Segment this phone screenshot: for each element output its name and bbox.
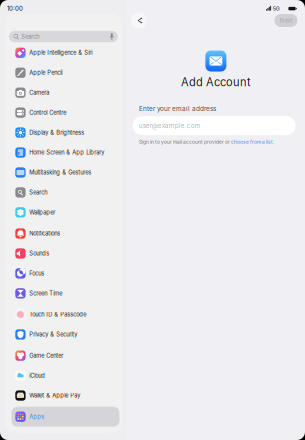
- button[interactable]: Back: [131, 12, 147, 28]
- staticText: Apple Intelligence & Siri: [29, 49, 92, 56]
- staticText: user@example.com: [139, 122, 201, 129]
- staticText: Screen Time: [29, 290, 62, 297]
- staticText: Wallet & Apple Pay: [29, 392, 80, 399]
- button[interactable]: Display & Brightness: [11, 123, 119, 142]
- staticText: Display & Brightness: [29, 129, 84, 136]
- staticText: Camera: [29, 89, 49, 96]
- button[interactable]: Wallet & Apple Pay: [11, 385, 119, 405]
- button[interactable]: Apps: [11, 407, 119, 427]
- staticText: Touch ID & Passcode: [29, 311, 86, 318]
- staticText: Notifications: [29, 230, 60, 237]
- staticText: Apps: [29, 413, 44, 420]
- staticText: Next: [279, 17, 292, 24]
- staticText: iCloud: [29, 372, 45, 379]
- button[interactable]: Touch ID & Passcode: [11, 304, 119, 324]
- staticText: Add Account: [181, 75, 251, 89]
- button[interactable]: user@example.com: [133, 116, 296, 135]
- button[interactable]: Apple Pencil: [11, 63, 119, 83]
- staticText: Control Centre: [29, 109, 66, 116]
- button[interactable]: Multitasking & Gestures: [11, 162, 119, 182]
- button[interactable]: Screen Time: [11, 283, 119, 303]
- staticText: Apple Pencil: [29, 69, 62, 76]
- staticText: Home Screen & App Library: [29, 149, 104, 156]
- button[interactable]: Privacy & Security: [11, 324, 119, 344]
- button[interactable]: Sounds: [11, 243, 119, 263]
- button[interactable]: Apple Intelligence & Siri: [11, 43, 119, 63]
- button[interactable]: iCloud: [11, 366, 119, 385]
- staticText: choose from a list.: [231, 139, 274, 145]
- staticText: Privacy & Security: [29, 331, 77, 338]
- staticText: Enter your email address: [139, 105, 216, 113]
- staticText: Sounds: [29, 250, 49, 257]
- button[interactable]: Search: [11, 182, 119, 202]
- button[interactable]: Focus: [11, 263, 119, 283]
- staticText: Search: [21, 33, 39, 40]
- button[interactable]: Notifications: [11, 223, 119, 243]
- button[interactable]: Game Center: [11, 346, 119, 365]
- staticText: 10:00: [7, 5, 23, 12]
- button[interactable]: Next: [274, 14, 297, 27]
- button[interactable]: Search: [5, 13, 122, 43]
- button[interactable]: Control Centre: [11, 103, 119, 122]
- staticText: Focus: [29, 270, 44, 277]
- staticText: Game Center: [29, 352, 63, 359]
- staticText: Multitasking & Gestures: [29, 169, 91, 176]
- staticText: Search: [29, 189, 47, 196]
- staticText: Sign in to your mail account provider or: [139, 139, 231, 145]
- staticText: Wallpaper: [29, 209, 55, 216]
- button[interactable]: choose from a list.: [231, 139, 274, 145]
- button[interactable]: Wallpaper: [11, 202, 119, 222]
- button[interactable]: Camera: [11, 83, 119, 103]
- button[interactable]: Home Screen & App Library: [11, 143, 119, 162]
- staticText: 5G: [273, 5, 280, 12]
